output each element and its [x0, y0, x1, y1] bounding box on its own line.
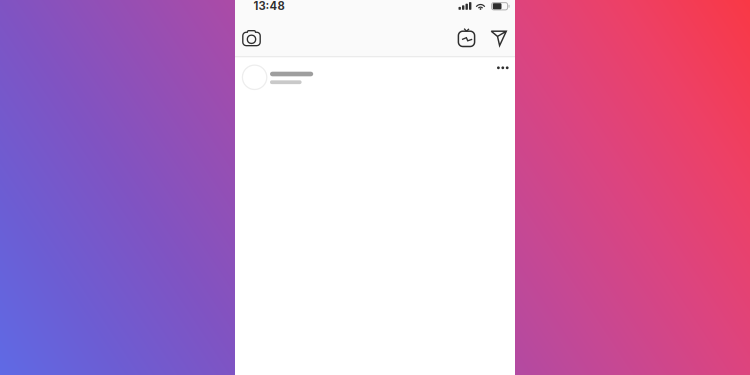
button[interactable]: IGTV — [452, 20, 480, 54]
button[interactable]: More options — [492, 57, 514, 79]
staticText: 13:48 — [253, 0, 284, 13]
button[interactable]: Direct messages — [485, 21, 513, 55]
button[interactable]: Camera — [236, 21, 266, 55]
